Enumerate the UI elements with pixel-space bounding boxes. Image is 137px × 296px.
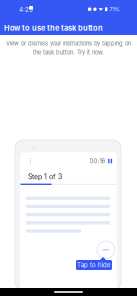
staticText: 00:16 bbox=[89, 157, 105, 165]
staticText: 4:25 bbox=[19, 6, 33, 13]
staticText: Tap to hide bbox=[77, 261, 111, 269]
staticText: How to use the task button bbox=[4, 23, 103, 32]
staticText: View or dismiss your instructions by tap… bbox=[6, 40, 131, 47]
staticText: 71% bbox=[109, 6, 119, 12]
staticText: the task button. Try it now. bbox=[33, 49, 104, 56]
staticText: Step 1 of 3 bbox=[28, 172, 62, 181]
